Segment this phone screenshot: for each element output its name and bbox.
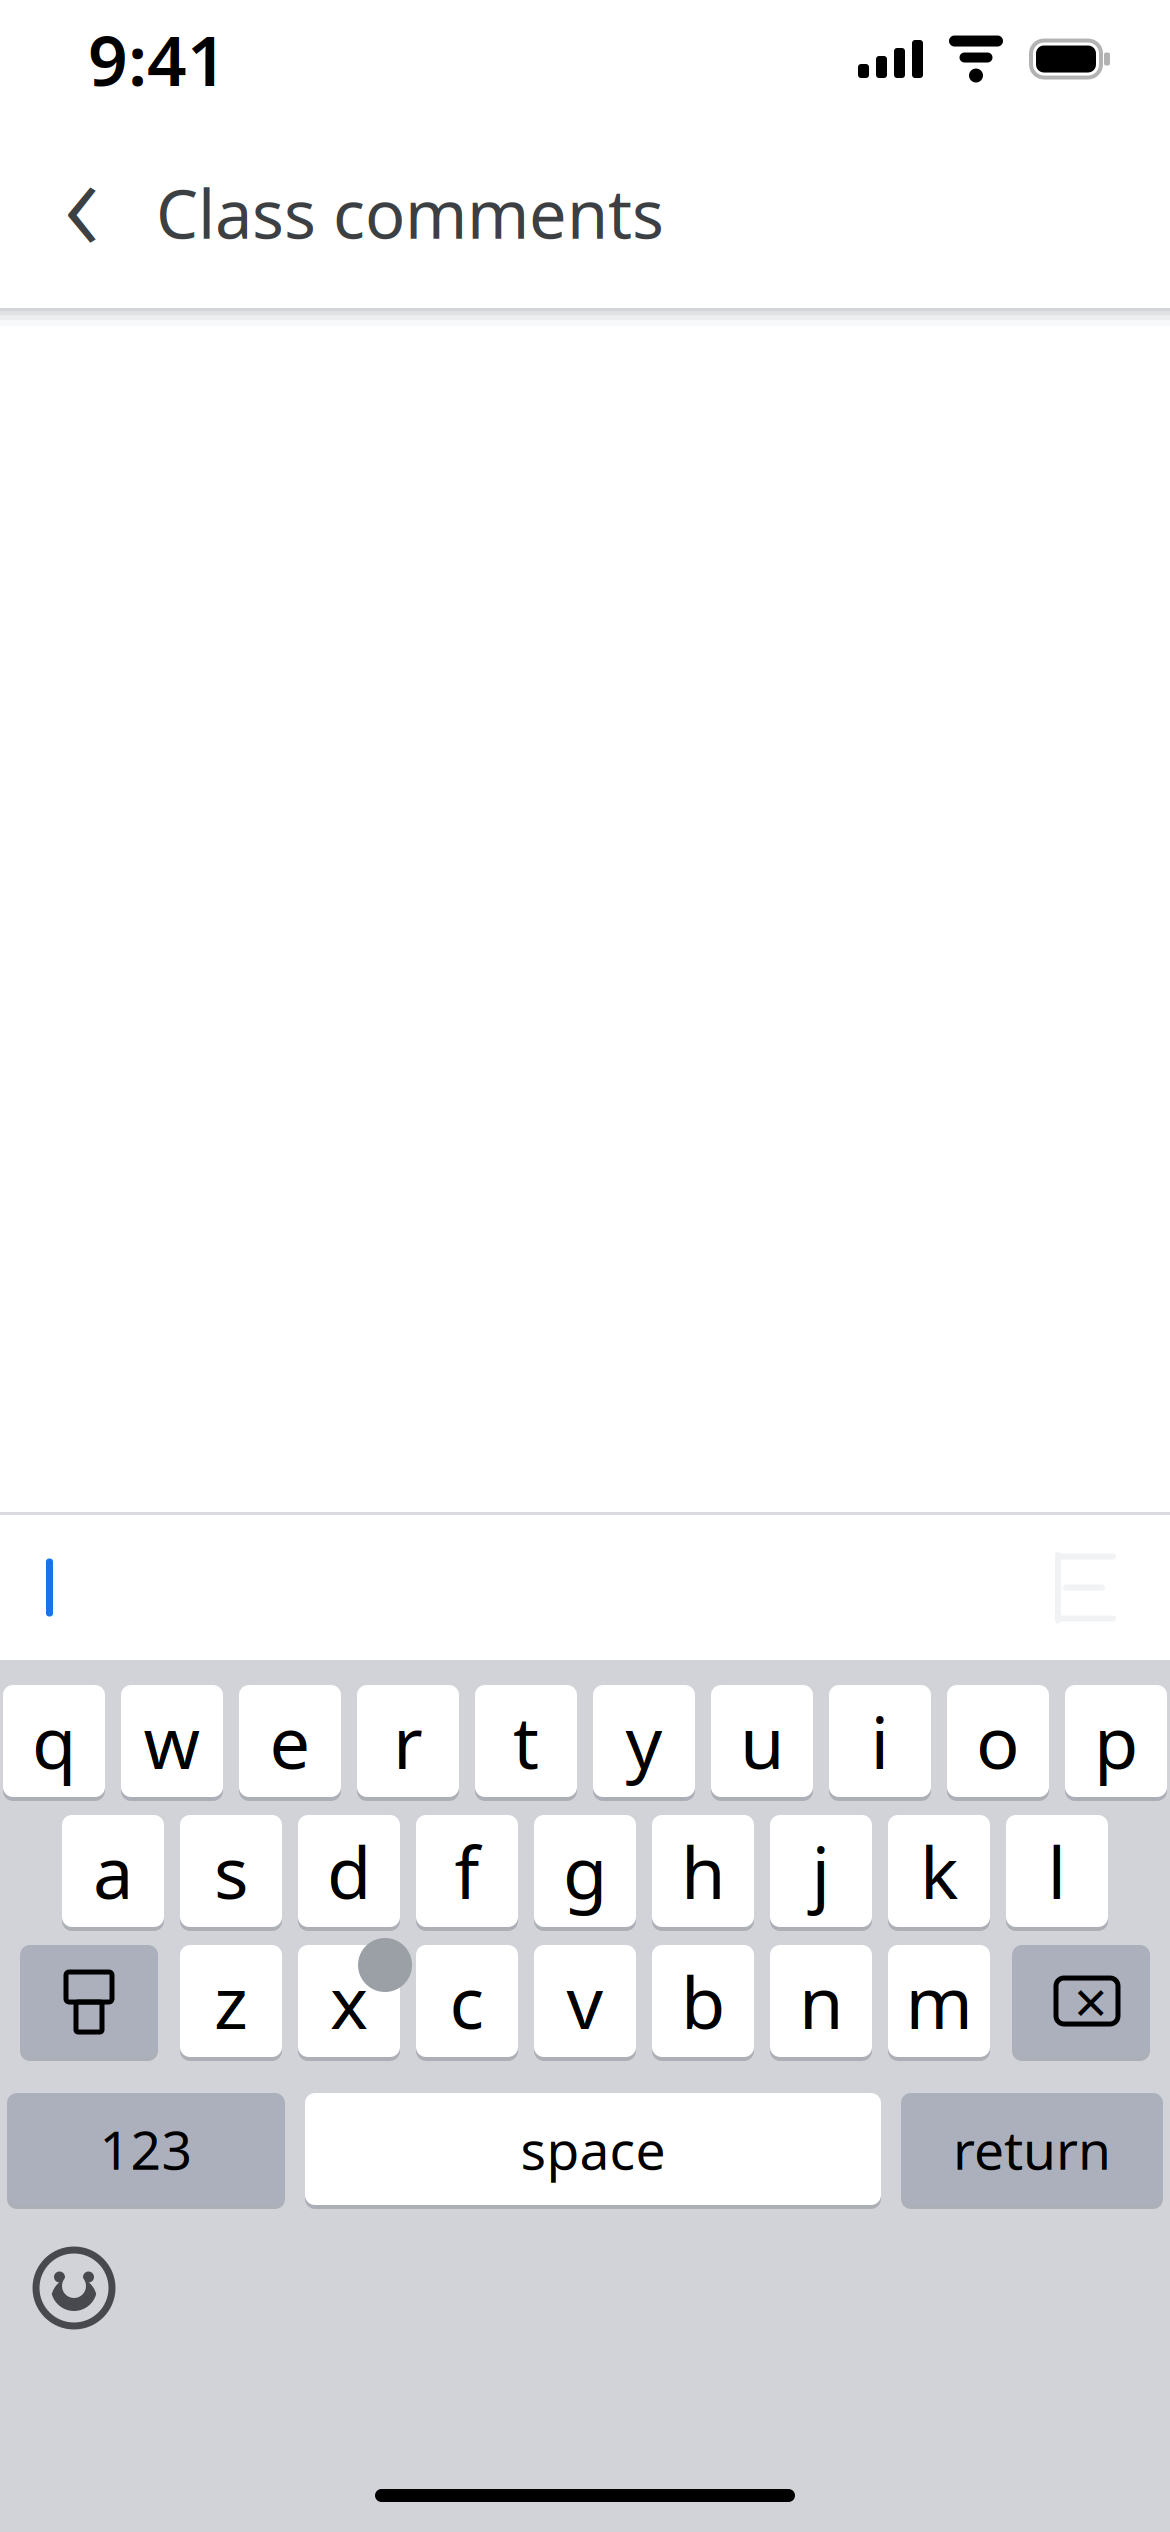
button[interactable]: q [3, 1682, 105, 1800]
button[interactable]: c [416, 1942, 518, 2060]
staticText: m [905, 1953, 972, 2049]
button[interactable]: s [180, 1812, 282, 1930]
staticText: f [454, 1823, 479, 1919]
staticText: b [681, 1953, 725, 2049]
button[interactable]: Emoji [14, 2228, 134, 2348]
button[interactable]: p [1065, 1682, 1167, 1800]
staticText: h [681, 1823, 725, 1919]
staticText: x [330, 1953, 368, 2049]
staticText: l [1047, 1823, 1066, 1919]
staticText: w [143, 1693, 200, 1789]
button[interactable]: l [1006, 1812, 1108, 1930]
staticText: r [393, 1693, 423, 1789]
button[interactable]: f [416, 1812, 518, 1930]
staticText: e [269, 1693, 310, 1789]
staticText: i [870, 1693, 889, 1789]
button[interactable]: d [298, 1812, 400, 1930]
button[interactable]: v [534, 1942, 636, 2060]
staticText: t [513, 1693, 539, 1789]
staticText: k [920, 1823, 958, 1919]
staticText: ‹ [63, 107, 100, 291]
staticText: y [625, 1693, 662, 1789]
button[interactable]: k [888, 1812, 990, 1930]
button[interactable]: return [901, 2090, 1163, 2208]
staticText: d [327, 1823, 371, 1919]
staticText: × [1074, 1962, 1108, 2040]
button[interactable]: e [239, 1682, 341, 1800]
button[interactable]: g [534, 1812, 636, 1930]
button[interactable]: 123 [7, 2090, 285, 2208]
staticText: space [520, 2114, 665, 2184]
staticText: p [1094, 1693, 1138, 1789]
button[interactable]: t [475, 1682, 577, 1800]
button[interactable]: Send [1024, 1527, 1144, 1647]
staticText: s [214, 1823, 248, 1919]
button[interactable]: a [62, 1812, 164, 1930]
button[interactable]: h [652, 1812, 754, 1930]
button[interactable]: x [298, 1942, 400, 2060]
button[interactable]: Delete [1012, 1942, 1150, 2060]
staticText: c [449, 1953, 484, 2049]
staticText: o [976, 1693, 1020, 1789]
button[interactable]: n [770, 1942, 872, 2060]
staticText: v [566, 1953, 603, 2049]
staticText: n [799, 1953, 843, 2049]
button[interactable]: y [593, 1682, 695, 1800]
button[interactable]: b [652, 1942, 754, 2060]
staticText: z [214, 1953, 248, 2049]
staticText: j [811, 1823, 830, 1919]
staticText: 123 [99, 2114, 192, 2184]
button[interactable]: Shift [20, 1942, 158, 2060]
button[interactable]: m [888, 1942, 990, 2060]
button[interactable]: i [829, 1682, 931, 1800]
staticText: q [32, 1693, 76, 1789]
button[interactable]: w [121, 1682, 223, 1800]
staticText: a [93, 1823, 133, 1919]
button[interactable]: z [180, 1942, 282, 2060]
button[interactable]: o [947, 1682, 1049, 1800]
staticText: Class comments [156, 169, 664, 257]
button[interactable]: r [357, 1682, 459, 1800]
button[interactable]: j [770, 1812, 872, 1930]
staticText: g [563, 1823, 607, 1919]
button[interactable]: Back [30, 161, 134, 265]
staticText: return [953, 2114, 1111, 2184]
staticText: 9:41 [88, 13, 227, 105]
button[interactable]: u [711, 1682, 813, 1800]
button[interactable]: space [305, 2090, 881, 2208]
staticText: u [740, 1693, 784, 1789]
